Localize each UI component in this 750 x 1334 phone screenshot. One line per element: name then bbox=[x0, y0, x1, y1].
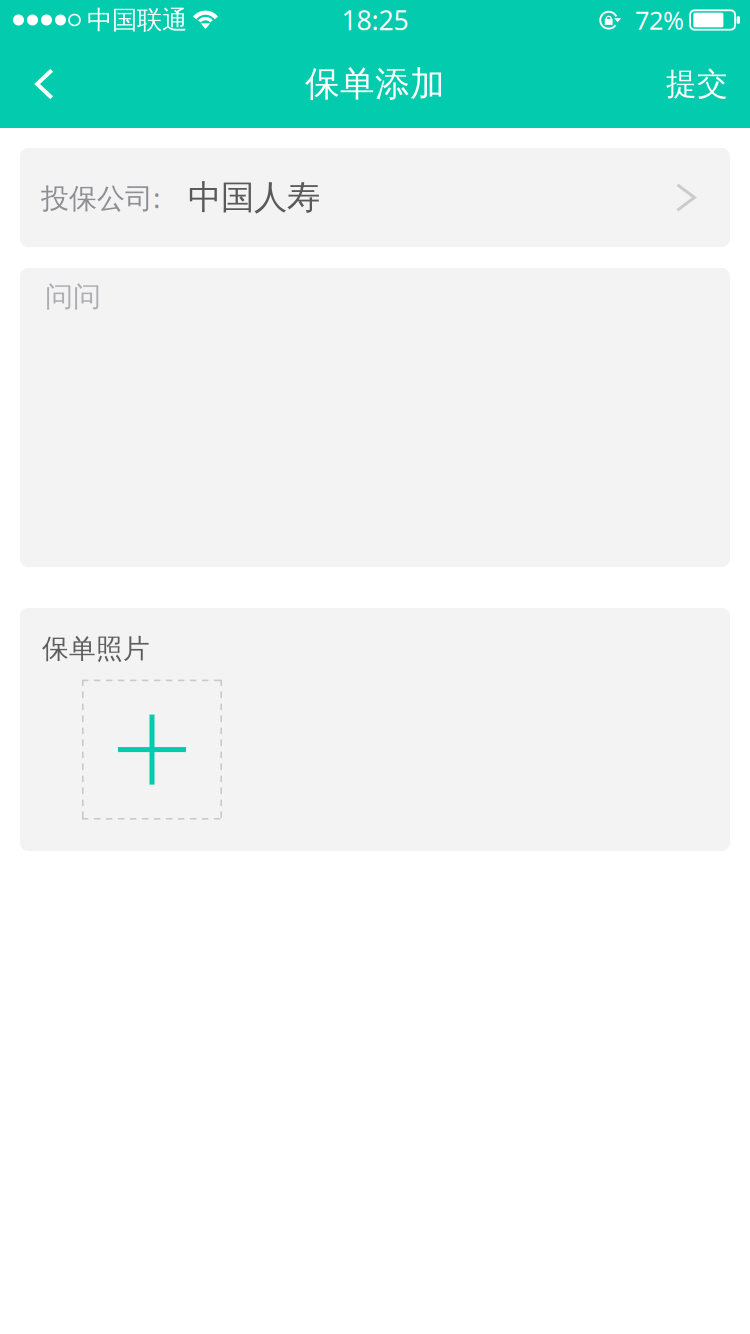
button[interactable]: 投保公司: bbox=[20, 148, 730, 247]
button[interactable]: 提交 bbox=[640, 38, 750, 130]
staticText: 18:25 bbox=[341, 2, 408, 38]
staticText: 保单照片 bbox=[42, 632, 150, 666]
staticText: 投保公司: bbox=[41, 178, 161, 216]
button[interactable]: Back bbox=[0, 42, 82, 126]
staticText: 提交 bbox=[666, 65, 728, 103]
staticText: 保单添加 bbox=[305, 62, 445, 106]
staticText: 中国人寿 bbox=[188, 176, 320, 218]
staticText: 中国联通 bbox=[87, 4, 187, 36]
staticText: 72% bbox=[635, 3, 684, 37]
button[interactable]: Add photo bbox=[82, 680, 222, 820]
staticText: 问问 bbox=[45, 279, 101, 314]
